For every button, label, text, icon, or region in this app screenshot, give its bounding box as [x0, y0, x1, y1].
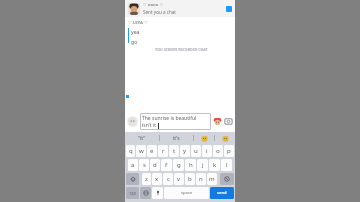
- button[interactable]: i: [202, 145, 212, 157]
- button[interactable]: m: [207, 173, 217, 185]
- button[interactable]: f: [161, 159, 172, 171]
- staticText: ♡ LEYA ♡: [128, 20, 148, 26]
- button[interactable]: l: [221, 159, 232, 171]
- button[interactable]: send: [210, 187, 234, 199]
- staticText: h: [189, 161, 193, 169]
- button[interactable]: c: [163, 173, 173, 185]
- button[interactable]: Emoji suggestion: [215, 132, 235, 144]
- staticText: r: [162, 147, 165, 155]
- staticText: t: [173, 147, 176, 155]
- button[interactable]: o: [213, 145, 223, 157]
- button[interactable]: u: [191, 145, 201, 157]
- button[interactable]: g: [173, 159, 184, 171]
- staticText: x: [155, 175, 159, 183]
- button[interactable]: v: [174, 173, 184, 185]
- staticText: space: [181, 190, 193, 196]
- button[interactable]: Camera: [224, 117, 233, 126]
- button[interactable]: h: [185, 159, 196, 171]
- staticText: e: [150, 147, 154, 155]
- button[interactable]: The sunrise is beautiful: [140, 113, 211, 130]
- button[interactable]: n: [196, 173, 206, 185]
- button[interactable]: k: [209, 159, 220, 171]
- button[interactable]: t: [169, 145, 179, 157]
- staticText: yea: [131, 28, 140, 35]
- button[interactable]: p: [224, 145, 234, 157]
- button[interactable]: ♡ nana ♡: [125, 0, 235, 17]
- button[interactable]: a: [128, 159, 138, 171]
- button[interactable]: r: [158, 145, 168, 157]
- staticText: c: [167, 175, 170, 183]
- staticText: l: [226, 161, 228, 169]
- staticText: isn't it: [142, 122, 157, 129]
- other: Chat: [226, 6, 232, 12]
- staticText: 123: [129, 191, 136, 196]
- staticText: w: [139, 147, 144, 155]
- button[interactable]: "it": [125, 132, 159, 144]
- staticText: v: [177, 175, 181, 183]
- staticText: s: [143, 161, 146, 169]
- staticText: f: [165, 161, 168, 169]
- button[interactable]: y: [180, 145, 190, 157]
- staticText: it's: [173, 135, 180, 142]
- staticText: k: [213, 161, 217, 169]
- button[interactable]: d: [150, 159, 160, 171]
- staticText: send: [217, 190, 227, 196]
- button[interactable]: j: [197, 159, 208, 171]
- button[interactable]: Emoji suggestion: [194, 132, 214, 144]
- button[interactable]: Stickers: [213, 117, 222, 126]
- button[interactable]: Shift: [126, 173, 139, 185]
- staticText: "it": [138, 135, 146, 142]
- button[interactable]: Voice input: [152, 187, 163, 199]
- button[interactable]: z: [142, 173, 151, 185]
- button[interactable]: space: [164, 187, 209, 199]
- button[interactable]: Profile: [127, 116, 138, 127]
- button[interactable]: Change keyboard: [140, 187, 151, 199]
- button[interactable]: b: [185, 173, 195, 185]
- staticText: n: [199, 175, 203, 183]
- staticText: u: [194, 147, 198, 155]
- button[interactable]: s: [139, 159, 149, 171]
- button[interactable]: e: [147, 145, 157, 157]
- button[interactable]: x: [152, 173, 162, 185]
- button[interactable]: Backspace: [220, 173, 234, 185]
- staticText: z: [145, 175, 148, 183]
- staticText: g: [177, 161, 181, 169]
- staticText: m: [209, 175, 215, 183]
- staticText: b: [188, 175, 192, 183]
- staticText: YOU SCREEN RECORDED CHAT: [155, 47, 208, 52]
- staticText: go: [131, 38, 138, 45]
- button[interactable]: it's: [160, 132, 193, 144]
- staticText: a: [131, 161, 135, 169]
- staticText: ♡ nana ♡: [143, 2, 164, 8]
- staticText: j: [202, 161, 204, 169]
- staticText: d: [153, 161, 157, 169]
- staticText: o: [216, 147, 220, 155]
- staticText: q: [129, 147, 133, 155]
- staticText: Sent you a chat: [143, 9, 177, 15]
- button[interactable]: q: [126, 145, 135, 157]
- staticText: i: [206, 147, 208, 155]
- staticText: y: [183, 147, 187, 155]
- staticText: p: [227, 147, 231, 155]
- button[interactable]: 123: [126, 187, 139, 199]
- staticText: The sunrise is beautiful: [142, 115, 197, 122]
- button[interactable]: w: [136, 145, 146, 157]
